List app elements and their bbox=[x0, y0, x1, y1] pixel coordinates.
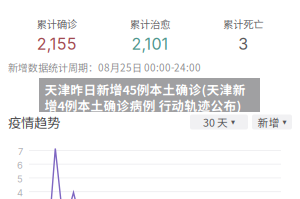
staticText: 4 bbox=[17, 187, 23, 198]
staticText: 5 bbox=[17, 173, 23, 185]
button[interactable]: 新增 bbox=[252, 114, 292, 129]
staticText: 疫情趋势 bbox=[8, 112, 60, 132]
staticText: 2,101 bbox=[131, 34, 168, 54]
staticText: 累计确诊 bbox=[37, 16, 77, 31]
staticText: 新增 bbox=[257, 114, 279, 130]
staticText: ▾ bbox=[282, 117, 286, 127]
button[interactable]: 30 天 bbox=[190, 114, 248, 129]
staticText: ▾ bbox=[231, 117, 235, 127]
staticText: 3 bbox=[238, 34, 248, 54]
staticText: 天津昨日新增45例本土确诊(天津新 bbox=[44, 80, 245, 98]
staticText: 累计治愈 bbox=[130, 16, 170, 31]
staticText: 6 bbox=[17, 160, 23, 171]
staticText: 2,155 bbox=[37, 34, 77, 54]
staticText: 新增数据统计周期：08月25日 00:00-24:00 bbox=[8, 60, 201, 74]
staticText: 累计死亡 bbox=[223, 16, 263, 31]
staticText: 增4例本土确诊病例 行动轨迹公布) bbox=[44, 96, 241, 114]
staticText: 30 天 bbox=[203, 114, 228, 130]
staticText: 7 bbox=[18, 146, 23, 157]
